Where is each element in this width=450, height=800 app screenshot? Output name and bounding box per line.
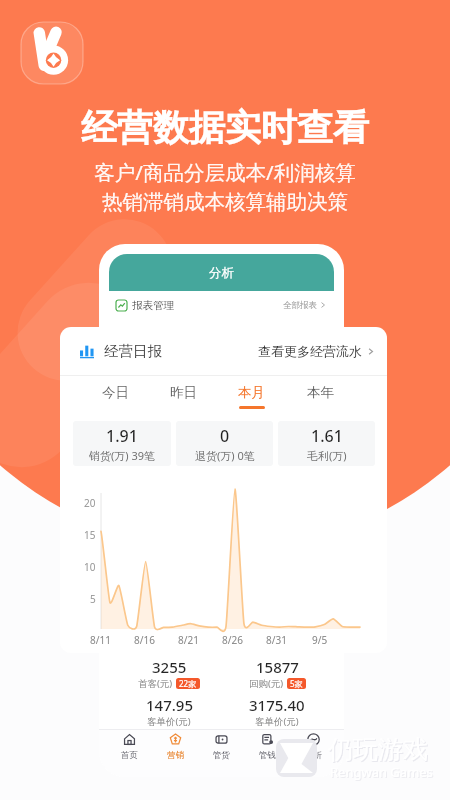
staticText: 客单价(元) <box>147 715 191 728</box>
button[interactable]: 3255 <box>115 657 223 690</box>
staticText: 营销 <box>167 750 184 761</box>
staticText: 热销滞销成本核算辅助决策 <box>102 189 348 215</box>
button[interactable]: 经营日报 <box>60 327 387 375</box>
staticText: 首客(元) <box>138 677 173 690</box>
staticText: 5 <box>90 592 96 606</box>
other: App logo <box>21 22 83 84</box>
staticText: 22家 <box>179 678 197 689</box>
button[interactable]: 管钱 <box>244 733 290 777</box>
button[interactable]: 3175.40 <box>223 695 331 728</box>
staticText: 8/16 <box>134 633 155 647</box>
staticText: 客户/商品分层成本/利润核算 <box>94 158 356 186</box>
staticText: 20 <box>84 496 96 510</box>
staticText: 今日 <box>102 384 129 401</box>
staticText: 毛利(万) <box>307 448 347 463</box>
button[interactable]: 昨日 <box>149 384 217 418</box>
staticText: 昨日 <box>170 384 197 401</box>
staticText: Rengwan Games <box>331 764 434 782</box>
button[interactable]: 管货 <box>198 733 244 777</box>
button[interactable]: 营销 <box>152 733 198 777</box>
staticText: 8/31 <box>266 633 287 647</box>
staticText: 经营日报 <box>104 342 162 360</box>
staticText: 8/21 <box>178 633 199 647</box>
staticText: 报表管理 <box>132 299 174 312</box>
staticText: 15877 <box>256 657 299 677</box>
button[interactable]: 本年 <box>286 384 355 418</box>
staticText: 管货 <box>213 750 230 761</box>
button[interactable]: 15877 <box>223 657 331 690</box>
button[interactable]: 报表管理 <box>109 291 334 319</box>
staticText: 8/26 <box>222 633 243 647</box>
staticText: 本月 <box>238 384 265 401</box>
staticText: 客单价(元) <box>255 715 299 728</box>
staticText: 8/11 <box>90 633 111 647</box>
staticText: 15 <box>84 528 96 542</box>
staticText: 0 <box>220 425 230 447</box>
staticText: 5家 <box>290 678 303 689</box>
staticText: 3255 <box>152 657 187 677</box>
staticText: 仍玩游戏 <box>328 734 428 765</box>
button[interactable]: 首页 <box>107 733 152 777</box>
button[interactable]: 今日 <box>81 384 149 418</box>
staticText: 本年 <box>307 384 334 401</box>
staticText: 147.95 <box>146 695 193 715</box>
staticText: 回购(元) <box>249 677 284 690</box>
button[interactable]: 0 <box>176 421 273 466</box>
staticText: 分析 <box>305 750 322 761</box>
staticText: 3175.40 <box>249 695 305 715</box>
button[interactable]: 本月 <box>217 384 286 418</box>
staticText: 1.61 <box>311 425 343 447</box>
staticText: 全部报表 <box>283 300 317 311</box>
staticText: 管钱 <box>259 750 276 761</box>
button[interactable]: 147.95 <box>115 695 223 728</box>
button[interactable]: 1.61 <box>278 421 375 466</box>
staticText: 1.91 <box>106 425 138 447</box>
staticText: Rengwan Games <box>330 763 433 781</box>
staticText: 退货(万) 0笔 <box>195 448 255 463</box>
staticText: 查看更多经营流水 <box>258 343 362 359</box>
staticText: 10 <box>84 560 96 574</box>
staticText: 销货(万) 39笔 <box>89 448 156 463</box>
staticText: 9/5 <box>312 633 328 647</box>
button[interactable]: 1.91 <box>73 421 171 466</box>
button[interactable]: 分析 <box>290 733 336 777</box>
staticText: 分析 <box>209 265 234 281</box>
staticText: 经营数据实时查看 <box>81 105 369 150</box>
staticText: 仍玩游戏 <box>329 735 429 766</box>
staticText: 首页 <box>121 750 138 761</box>
